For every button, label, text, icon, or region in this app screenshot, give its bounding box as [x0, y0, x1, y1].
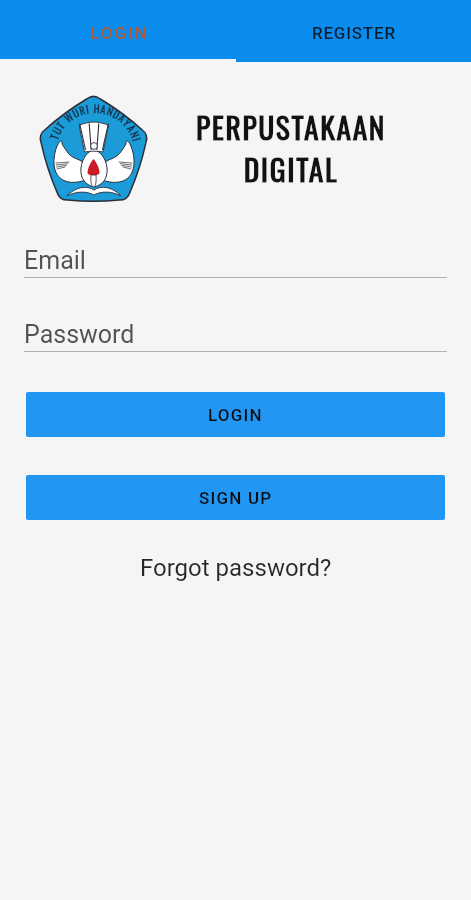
staticText: REGISTER — [312, 23, 396, 43]
staticText: Password — [24, 320, 135, 349]
staticText: SIGN UP — [199, 488, 273, 508]
button[interactable]: LOGIN — [26, 392, 445, 437]
button[interactable]: LOGIN — [0, 3, 235, 62]
staticText: Email — [24, 246, 86, 275]
button[interactable]: Forgot password? — [0, 548, 471, 588]
other: Logo Tut Wuri Handayani — [37, 92, 151, 202]
button[interactable]: REGISTER — [235, 3, 471, 62]
staticText: LOGIN — [90, 23, 149, 43]
staticText: LOGIN — [208, 405, 263, 425]
staticText: PERPUSTAKAAN DIGITAL — [169, 105, 413, 190]
button[interactable]: SIGN UP — [26, 475, 445, 520]
staticText: Forgot password? — [140, 554, 332, 582]
